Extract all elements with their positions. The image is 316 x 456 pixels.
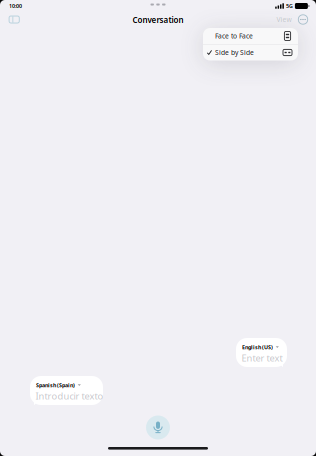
staticText: View — [276, 15, 291, 24]
button[interactable]: View — [271, 12, 297, 26]
button[interactable]: Start Listening — [144, 413, 172, 441]
button[interactable]: Face to Face — [203, 28, 298, 44]
staticText: Enter text — [241, 352, 282, 364]
staticText: Spanish (Spain) — [36, 382, 75, 389]
button[interactable]: More Options — [295, 12, 311, 26]
staticText: Conversation — [132, 15, 183, 25]
staticText: English (US) — [242, 344, 273, 351]
staticText: Introducir texto — [35, 390, 103, 402]
button[interactable]: Show Sidebar — [3, 11, 25, 27]
staticText: Side by Side — [215, 48, 254, 57]
staticText: Face to Face — [215, 32, 253, 40]
button[interactable]: Side by Side — [203, 44, 298, 60]
staticText: 5G — [286, 2, 293, 10]
staticText: 10:00 — [9, 2, 22, 10]
